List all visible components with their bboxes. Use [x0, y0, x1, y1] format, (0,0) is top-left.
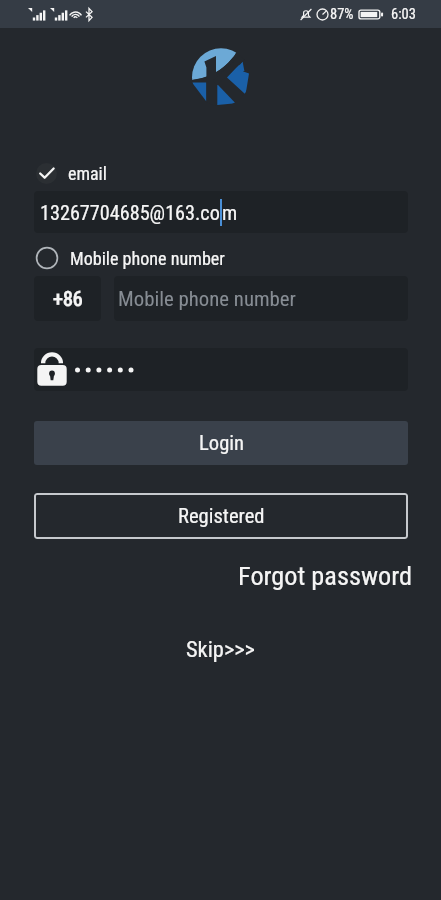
button[interactable]: Forgot password: [238, 561, 412, 592]
staticText: 87%: [330, 6, 354, 23]
staticText: Mobile phone number: [70, 248, 225, 269]
button[interactable]: 13267704685@163.co: [34, 191, 408, 233]
button[interactable]: Registered: [34, 493, 408, 539]
button[interactable]: email: [36, 161, 107, 185]
staticText: 6:03: [391, 6, 416, 23]
button[interactable]: Login: [34, 421, 408, 465]
staticText: m: [222, 201, 238, 225]
staticText: Mobile phone number: [118, 287, 296, 311]
staticText: email: [68, 163, 107, 184]
button[interactable]: [34, 348, 408, 391]
staticText: Registered: [178, 504, 265, 528]
staticText: +86: [53, 287, 83, 310]
staticText: 13267704685@163.co: [40, 201, 220, 225]
button[interactable]: Skip>>>: [186, 636, 255, 662]
button[interactable]: Mobile phone number: [114, 276, 408, 321]
staticText: Login: [199, 431, 244, 455]
button[interactable]: Mobile phone number: [35, 246, 225, 270]
button[interactable]: +86: [34, 276, 101, 321]
